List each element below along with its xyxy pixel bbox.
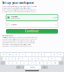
staticText: m bbox=[54, 62, 55, 64]
button[interactable]: Emoji bbox=[21, 65, 24, 69]
button[interactable]: r bbox=[20, 53, 25, 56]
staticText: credit card is required to begin using t… bbox=[2, 11, 35, 13]
button[interactable]: w bbox=[7, 53, 13, 56]
staticText: d bbox=[18, 58, 19, 60]
staticText: Up to 10 seats bbox=[11, 17, 20, 19]
staticText: go bbox=[44, 66, 46, 68]
button[interactable]: b bbox=[36, 61, 43, 65]
button[interactable]: Solo plan bbox=[6, 22, 58, 28]
staticText: h bbox=[38, 58, 39, 60]
button[interactable]: Go bbox=[41, 65, 48, 69]
staticText: s bbox=[12, 58, 13, 60]
staticText: Priority support with a one business day… bbox=[2, 38, 37, 40]
staticText: Questions? Our team is happy to help you… bbox=[2, 45, 31, 47]
staticText: y bbox=[35, 54, 36, 55]
button[interactable]: t bbox=[26, 53, 32, 56]
staticText: space bbox=[30, 66, 35, 68]
button[interactable]: s bbox=[9, 57, 15, 60]
button[interactable]: o bbox=[51, 53, 57, 56]
staticText: p bbox=[60, 54, 61, 55]
button[interactable]: v bbox=[28, 61, 36, 65]
button[interactable]: g bbox=[29, 57, 35, 60]
button[interactable]: p bbox=[57, 53, 63, 56]
staticText: q bbox=[3, 54, 4, 55]
staticText: What is included bbox=[2, 35, 13, 37]
button[interactable]: d bbox=[16, 57, 22, 60]
button[interactable]: k bbox=[49, 57, 55, 60]
staticText: $6 bbox=[55, 24, 57, 25]
staticText: r bbox=[22, 54, 23, 55]
staticText: Every plan starts with a fourteen day fr… bbox=[2, 9, 36, 11]
staticText: Choose the plan that fits your team best… bbox=[2, 6, 37, 7]
staticText: k bbox=[51, 58, 52, 60]
button[interactable]: Delete bbox=[59, 61, 63, 65]
button[interactable]: e bbox=[13, 53, 19, 56]
button[interactable]: u bbox=[39, 53, 44, 56]
button[interactable]: c bbox=[21, 61, 28, 65]
button[interactable]: i bbox=[45, 53, 51, 56]
staticText: n bbox=[47, 62, 48, 64]
button[interactable]: Continue bbox=[6, 29, 58, 34]
staticText: $12 bbox=[54, 17, 57, 18]
button[interactable]: Numbers bbox=[16, 65, 21, 69]
button[interactable]: x bbox=[13, 61, 20, 65]
staticText: Unlimited projects, shared boards and gu… bbox=[2, 37, 38, 38]
button[interactable]: a bbox=[3, 57, 9, 60]
staticText: Set up your workspace bbox=[2, 1, 34, 5]
button[interactable]: Space bbox=[24, 65, 41, 69]
staticText: Continue bbox=[25, 30, 39, 33]
button[interactable]: f bbox=[22, 57, 28, 60]
staticText: e bbox=[16, 54, 17, 55]
staticText: a bbox=[5, 58, 6, 60]
staticText: w bbox=[9, 54, 10, 55]
staticText: 123 bbox=[17, 66, 20, 68]
button[interactable]: n bbox=[44, 61, 51, 65]
staticText: u bbox=[41, 54, 42, 55]
staticText: Solo plan bbox=[11, 24, 17, 25]
staticText: between plans at any time from the billi… bbox=[2, 7, 31, 9]
button[interactable]: Shift bbox=[1, 61, 5, 65]
button[interactable]: h bbox=[35, 57, 42, 60]
staticText: Team plan bbox=[11, 16, 18, 18]
staticText: Single sign on for everyone in your orga… bbox=[2, 42, 35, 44]
button[interactable]: y bbox=[32, 53, 38, 56]
button[interactable]: l bbox=[55, 57, 61, 60]
staticText: Cancel or change the plan at any time yo… bbox=[2, 44, 31, 45]
button[interactable]: q bbox=[1, 53, 6, 56]
button[interactable]: z bbox=[5, 61, 13, 65]
button[interactable]: Team plan bbox=[6, 14, 58, 21]
staticText: Advanced analytics, reporting and export… bbox=[2, 40, 35, 42]
staticText: o bbox=[54, 54, 55, 55]
button[interactable]: m bbox=[51, 61, 59, 65]
